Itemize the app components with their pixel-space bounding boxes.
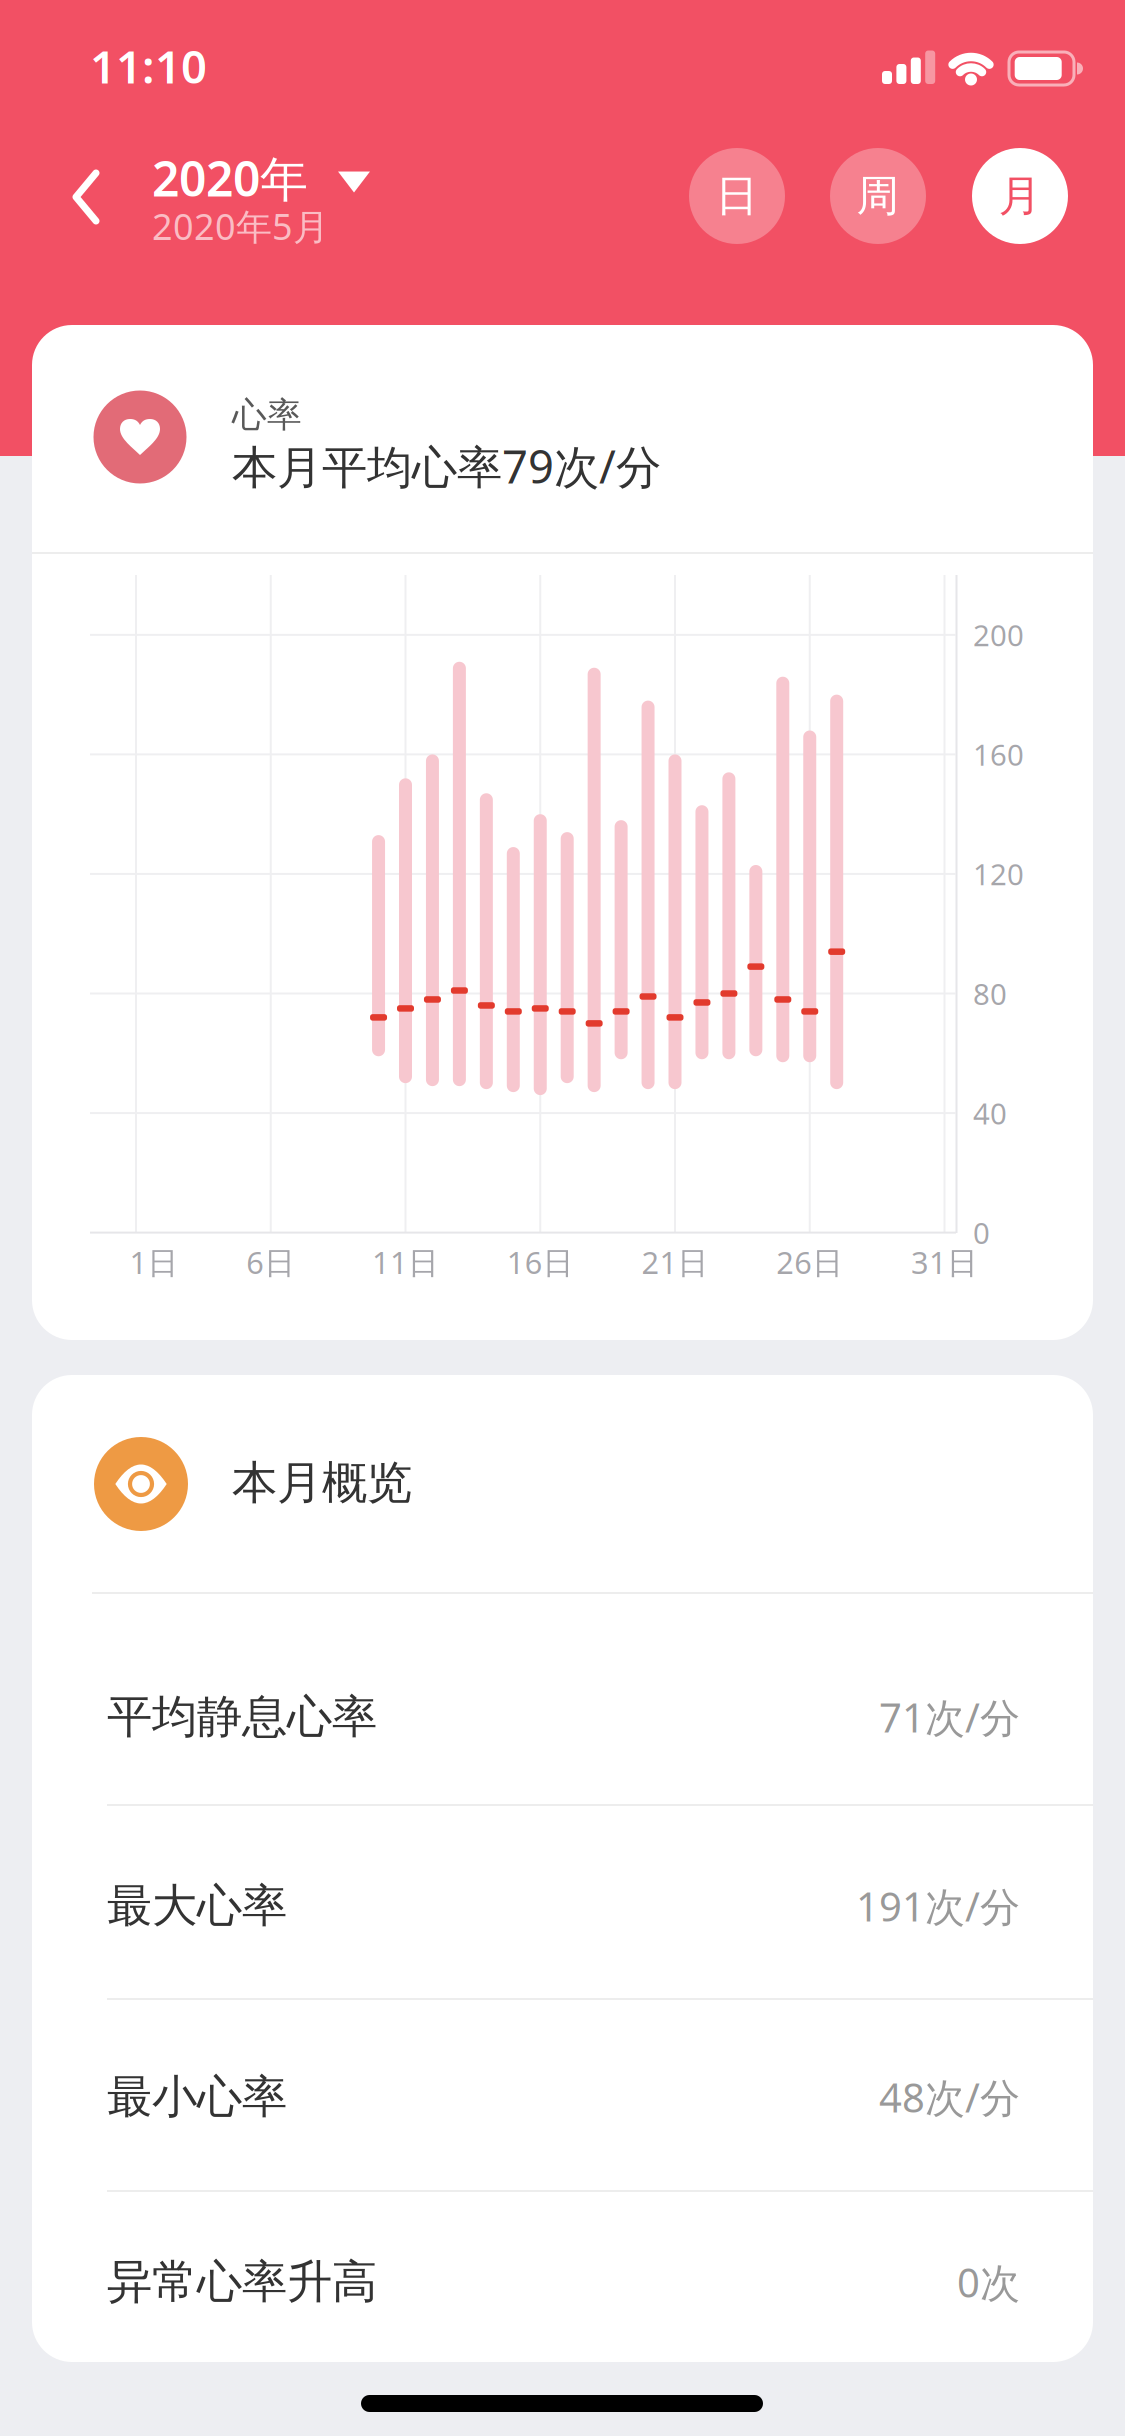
staticText: 月: [998, 170, 1041, 222]
staticText: 异常心率升高: [107, 2254, 377, 2310]
staticText: 191次/分: [856, 1879, 1020, 1932]
staticText: 31日: [911, 1242, 978, 1282]
staticText: 本月平均心率79次/分: [232, 436, 661, 496]
staticText: 48次/分: [879, 2070, 1020, 2123]
button[interactable]: 月: [972, 148, 1068, 244]
button[interactable]: 2020年: [152, 140, 572, 260]
staticText: 26日: [776, 1242, 843, 1282]
staticText: 160: [973, 735, 1024, 774]
staticText: 11日: [372, 1242, 439, 1282]
staticText: 80: [973, 974, 1007, 1013]
staticText: 2020年5月: [152, 202, 329, 250]
staticText: 日: [715, 170, 758, 222]
staticText: 71次/分: [879, 1690, 1020, 1743]
staticText: 本月概览: [232, 1455, 412, 1511]
staticText: 2020年: [152, 146, 308, 210]
staticText: 0次: [957, 2255, 1020, 2308]
staticText: 最大心率: [107, 1878, 287, 1934]
staticText: 周: [856, 170, 899, 222]
staticText: 40: [973, 1094, 1007, 1133]
staticText: 6日: [246, 1242, 295, 1282]
staticText: 0: [973, 1213, 990, 1252]
staticText: 21日: [641, 1242, 708, 1282]
button[interactable]: 日: [689, 148, 785, 244]
staticText: 1日: [129, 1242, 178, 1282]
staticText: 最小心率: [107, 2069, 287, 2125]
staticText: 平均静息心率: [107, 1689, 377, 1745]
staticText: 11:10: [90, 36, 207, 96]
staticText: 200: [973, 615, 1024, 654]
button[interactable]: [48, 159, 124, 235]
staticText: 心率: [232, 394, 302, 436]
staticText: 120: [973, 854, 1024, 893]
staticText: 16日: [507, 1242, 574, 1282]
button[interactable]: 周: [830, 148, 926, 244]
